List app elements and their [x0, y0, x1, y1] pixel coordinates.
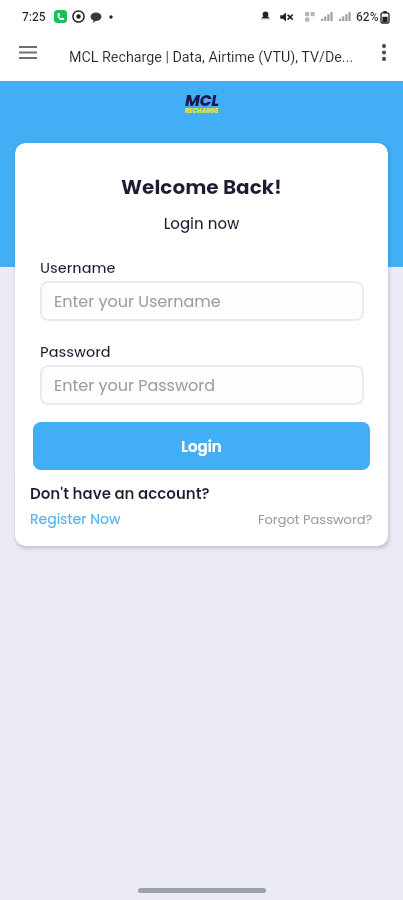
staticText: Login — [181, 436, 222, 457]
staticText: Enter your Username — [54, 290, 221, 312]
staticText: Enter your Password — [54, 374, 216, 396]
staticText: RECHARGE — [185, 107, 219, 115]
button[interactable]: Enter your Password — [40, 365, 364, 405]
staticText: MCL — [185, 89, 219, 111]
staticText: Username — [40, 258, 116, 278]
staticText: Welcome Back! — [15, 173, 388, 201]
button[interactable]: More options — [365, 33, 403, 81]
staticText: 62% — [356, 10, 379, 24]
staticText: Don't have an account? — [30, 483, 210, 504]
button[interactable]: Register Now — [30, 509, 121, 529]
staticText: 7:25 — [22, 10, 46, 24]
button[interactable]: Enter your Username — [40, 281, 364, 321]
staticText: Password — [40, 342, 111, 362]
button[interactable]: Login — [33, 422, 370, 470]
staticText: MCL Recharge | Data, Airtime (VTU), TV/D… — [69, 49, 365, 66]
button[interactable]: Open navigation menu — [0, 33, 56, 81]
staticText: Login now — [15, 213, 388, 234]
button[interactable]: Forgot Password? — [258, 510, 373, 528]
